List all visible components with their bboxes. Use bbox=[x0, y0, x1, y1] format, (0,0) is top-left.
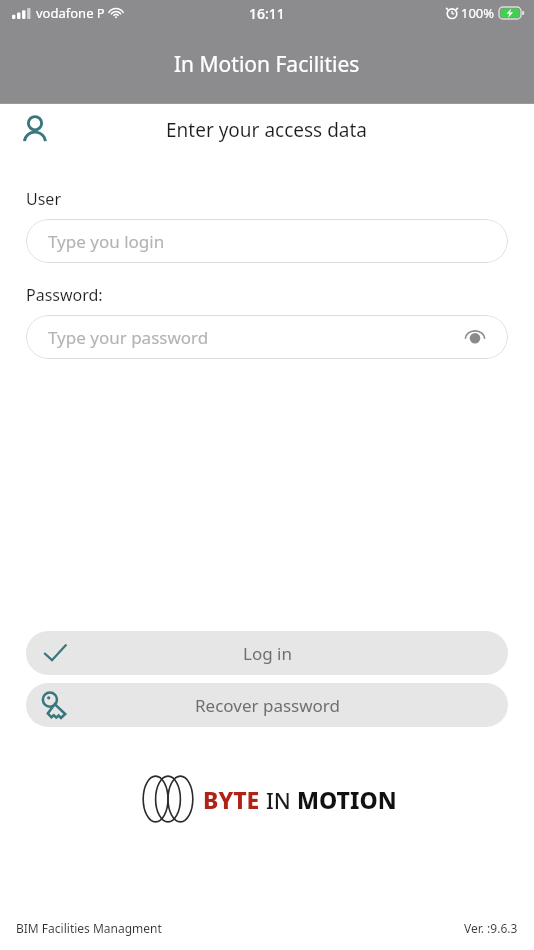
staticText: IN bbox=[266, 785, 291, 815]
staticText: BYTE bbox=[203, 784, 260, 815]
staticText: Recover password bbox=[195, 694, 340, 717]
staticText: In Motion Facilities bbox=[174, 50, 360, 79]
staticText: MOTION bbox=[297, 784, 397, 815]
staticText: vodafone P bbox=[36, 4, 105, 22]
other: User profile bbox=[18, 113, 52, 147]
staticText: Type you login bbox=[48, 230, 165, 253]
button[interactable]: Type your password bbox=[26, 315, 508, 359]
staticText: Log in bbox=[243, 642, 292, 665]
staticText: 16:11 bbox=[249, 4, 285, 23]
other: Show password bbox=[464, 326, 486, 348]
button[interactable]: Recover password bbox=[26, 683, 508, 727]
staticText: Ver. :9.6.3 bbox=[464, 920, 518, 936]
staticText: Password: bbox=[26, 284, 103, 306]
staticText: User bbox=[26, 188, 61, 210]
staticText: Enter your access data bbox=[166, 117, 368, 143]
button[interactable]: Type you login bbox=[26, 219, 508, 263]
staticText: Type your password bbox=[48, 326, 209, 349]
button[interactable]: Log in bbox=[26, 631, 508, 675]
staticText: BIM Facilities Managment bbox=[16, 920, 162, 936]
staticText: 100% bbox=[461, 4, 495, 22]
